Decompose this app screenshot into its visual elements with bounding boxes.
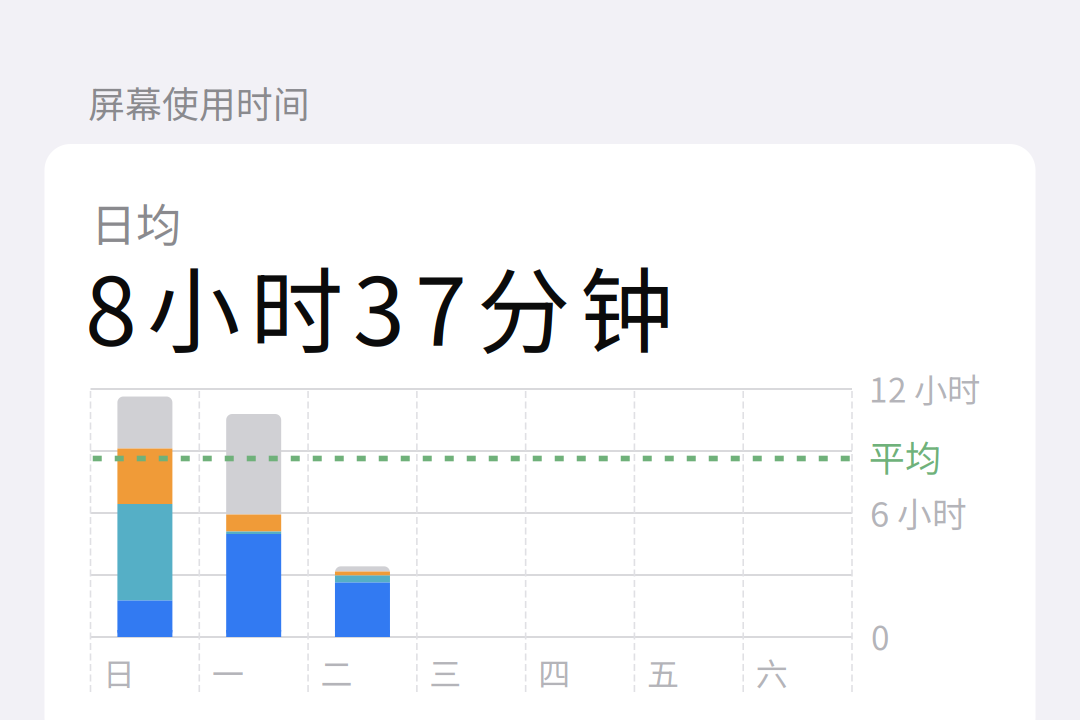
staticText: 8小时37分钟 (85, 237, 673, 372)
staticText: 平均 (869, 430, 941, 482)
staticText: 一 (212, 649, 244, 695)
staticText: 12 小时 (869, 364, 980, 412)
button[interactable]: 日均 (0, 0, 1080, 720)
staticText: 屏幕使用时间 (88, 75, 310, 129)
staticText: 五 (647, 649, 679, 695)
staticText: 三 (429, 649, 461, 695)
staticText: 6 小时 (870, 487, 967, 537)
staticText: 日均 (91, 189, 181, 255)
staticText: 四 (538, 649, 570, 695)
staticText: 六 (756, 649, 788, 695)
staticText: 0 (871, 612, 890, 660)
button[interactable]: 屏幕使用时间 (0, 0, 1080, 720)
staticText: 二 (321, 649, 353, 695)
staticText: 日 (103, 649, 135, 695)
